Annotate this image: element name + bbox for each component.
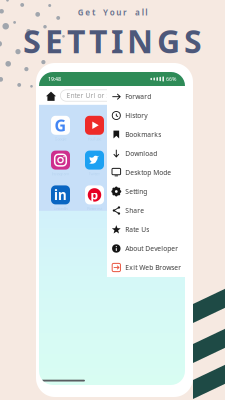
staticText: Pinterest: [87, 206, 102, 211]
staticText: o: [110, 7, 115, 18]
staticText: r: [123, 7, 127, 18]
staticText: Bookmarks: [125, 130, 161, 139]
staticText: T: [89, 20, 107, 62]
button[interactable]: History: [107, 106, 185, 125]
staticText: N: [127, 20, 153, 62]
staticText: 66%: [166, 75, 176, 83]
staticText: G: [54, 115, 66, 136]
button[interactable]: Rate Us: [107, 220, 185, 239]
staticText: E: [45, 20, 63, 62]
button[interactable]: Forward: [107, 87, 185, 106]
button[interactable]: Exit Web Browser: [107, 258, 185, 277]
button[interactable]: Share: [107, 201, 185, 220]
staticText: Forward: [125, 92, 151, 101]
staticText: l: [145, 7, 147, 18]
button[interactable]: About Developer: [107, 239, 185, 258]
staticText: S: [23, 20, 41, 62]
button[interactable]: in: [51, 185, 70, 211]
staticText: I: [111, 20, 123, 62]
button[interactable]: Setting: [107, 182, 185, 201]
button[interactable]: Instagram: [51, 151, 70, 176]
staticText: Y: [103, 7, 108, 18]
staticText: Share: [125, 206, 144, 215]
button[interactable]: Download: [107, 144, 185, 163]
staticText: a: [135, 7, 140, 18]
staticText: History: [125, 111, 147, 120]
staticText: LinkedIn: [53, 206, 67, 211]
staticText: Enter Url or Search: [66, 91, 128, 100]
staticText: Exit Web Browser: [125, 263, 181, 272]
staticText: G: [157, 20, 180, 62]
staticText: Instagram: [51, 171, 69, 176]
staticText: Download: [125, 149, 157, 158]
staticText: p: [90, 187, 98, 203]
staticText: u: [116, 7, 121, 18]
staticText: About Developer: [125, 244, 178, 253]
staticText: S: [184, 20, 202, 62]
button[interactable]: G: [51, 116, 70, 142]
staticText: Setting: [125, 187, 147, 196]
staticText: Rate Us: [125, 225, 149, 234]
staticText: Desktop Mode: [125, 168, 171, 177]
staticText: 19:48: [48, 75, 61, 83]
button[interactable]: YouTube: [85, 116, 104, 142]
button[interactable]: Twitter: [85, 151, 104, 176]
button[interactable]: Bookmarks: [107, 125, 185, 144]
button[interactable]: Desktop Mode: [107, 163, 185, 182]
staticText: l: [142, 7, 144, 18]
staticText: T: [67, 20, 85, 62]
button[interactable]: p: [85, 185, 104, 211]
staticText: t: [92, 7, 95, 18]
staticText: e: [85, 7, 90, 18]
staticText: G: [78, 7, 84, 18]
staticText: in: [54, 186, 67, 204]
